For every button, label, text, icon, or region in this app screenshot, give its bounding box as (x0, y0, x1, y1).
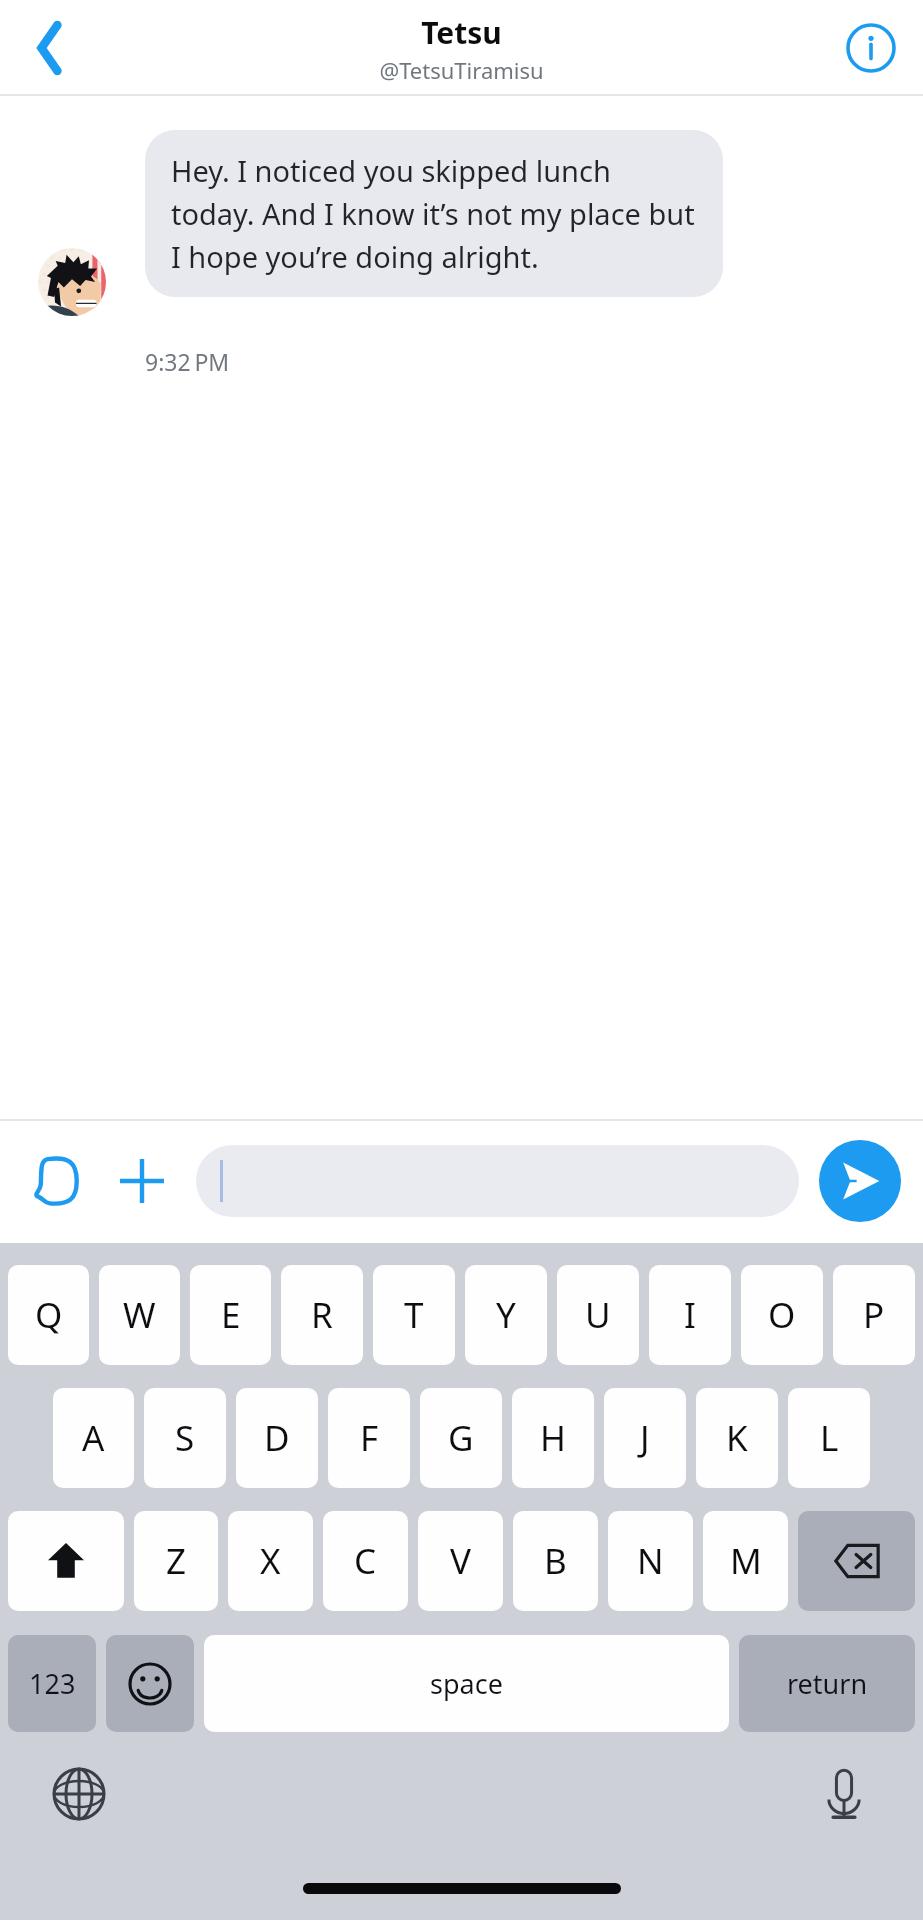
staticText: 123 (29, 1665, 76, 1702)
button[interactable]: R (281, 1265, 363, 1365)
staticText: A (82, 1414, 105, 1462)
staticText: W (123, 1291, 156, 1339)
button[interactable]: Conversation info (835, 12, 907, 84)
button[interactable]: Q (8, 1265, 89, 1365)
staticText: 9:32 PM (145, 346, 230, 377)
staticText: J (640, 1414, 650, 1462)
button[interactable]: return (739, 1635, 915, 1732)
button[interactable]: W (99, 1265, 180, 1365)
staticText: C (354, 1537, 377, 1585)
button[interactable]: V (418, 1511, 503, 1611)
button[interactable]: M (703, 1511, 788, 1611)
staticText: Z (166, 1537, 187, 1585)
button[interactable]: Tetsu profile picture (38, 248, 106, 316)
staticText: S (175, 1414, 195, 1462)
button[interactable]: Shift (8, 1511, 124, 1611)
staticText: E (221, 1291, 241, 1339)
staticText: return (787, 1665, 868, 1702)
staticText: Hey. I noticed you skipped lunch today. … (171, 151, 697, 276)
button[interactable]: A (53, 1388, 134, 1488)
button[interactable]: C (323, 1511, 408, 1611)
staticText: Q (35, 1291, 63, 1339)
button[interactable]: space (204, 1635, 729, 1732)
button[interactable]: K (696, 1388, 778, 1488)
button[interactable]: Hey. I noticed you skipped lunch today. … (145, 130, 723, 297)
staticText: G (448, 1414, 474, 1462)
staticText: N (637, 1537, 664, 1585)
staticText: Y (496, 1291, 516, 1339)
button[interactable]: X (228, 1511, 313, 1611)
staticText: R (311, 1291, 333, 1339)
staticText: X (260, 1537, 281, 1585)
button[interactable]: Back (12, 12, 84, 84)
button[interactable]: T (373, 1265, 455, 1365)
staticText: V (450, 1537, 472, 1585)
staticText: U (585, 1291, 611, 1339)
button[interactable]: Send (819, 1140, 901, 1222)
button[interactable]: F (328, 1388, 410, 1488)
staticText: B (544, 1537, 567, 1585)
button[interactable]: H (512, 1388, 594, 1488)
button[interactable]: E (190, 1265, 271, 1365)
button[interactable]: P (833, 1265, 915, 1365)
staticText: I (684, 1291, 696, 1339)
staticText: D (264, 1414, 290, 1462)
staticText: space (430, 1665, 503, 1702)
button[interactable]: Z (134, 1511, 218, 1611)
button[interactable]: G (420, 1388, 502, 1488)
staticText: M (730, 1537, 762, 1585)
button[interactable]: Emoji (106, 1635, 194, 1732)
staticText: Tetsu (421, 12, 502, 53)
button[interactable]: Add media (106, 1145, 178, 1217)
button[interactable]: Stickers (22, 1145, 94, 1217)
button[interactable]: Dictate (809, 1759, 879, 1829)
button[interactable] (196, 1145, 799, 1217)
staticText: T (404, 1291, 424, 1339)
button[interactable]: Backspace (798, 1511, 915, 1611)
button[interactable]: U (557, 1265, 639, 1365)
button[interactable]: L (788, 1388, 870, 1488)
staticText: @TetsuTiramisu (379, 55, 544, 85)
staticText: H (540, 1414, 566, 1462)
button[interactable]: I (649, 1265, 731, 1365)
button[interactable]: 123 (8, 1635, 96, 1732)
button[interactable]: O (741, 1265, 823, 1365)
button[interactable]: D (236, 1388, 318, 1488)
button[interactable]: Change keyboard language (44, 1759, 114, 1829)
button[interactable]: Y (465, 1265, 547, 1365)
button[interactable]: J (604, 1388, 686, 1488)
staticText: K (726, 1414, 748, 1462)
button[interactable]: N (608, 1511, 693, 1611)
staticText: O (768, 1291, 796, 1339)
staticText: F (360, 1414, 379, 1462)
button[interactable]: B (513, 1511, 598, 1611)
staticText: L (820, 1414, 839, 1462)
staticText: P (863, 1291, 885, 1339)
button[interactable]: S (144, 1388, 226, 1488)
